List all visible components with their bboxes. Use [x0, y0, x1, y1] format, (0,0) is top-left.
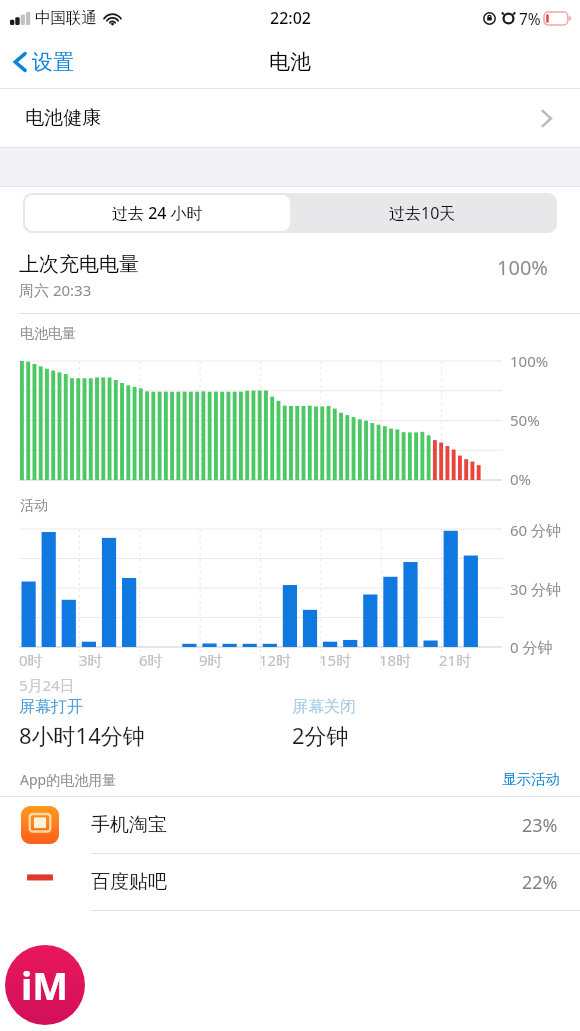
- staticText: 屏幕打开: [19, 697, 83, 717]
- staticText: 0 分钟: [510, 637, 553, 657]
- staticText: 21时: [439, 650, 472, 670]
- button[interactable]: 设置: [0, 43, 86, 81]
- staticText: 电池: [269, 49, 311, 75]
- staticText: 屏幕关闭: [292, 697, 356, 717]
- button[interactable]: 电池健康: [0, 89, 580, 147]
- staticText: 电池健康: [25, 106, 101, 130]
- staticText: 中国联通: [35, 8, 97, 28]
- staticText: 电池电量: [20, 325, 76, 343]
- staticText: 23%: [522, 813, 558, 838]
- staticText: 上次充电电量: [19, 252, 139, 277]
- staticText: 30 分钟: [510, 579, 562, 599]
- staticText: 15时: [319, 650, 352, 670]
- staticText: 7%: [519, 8, 541, 29]
- staticText: 百度贴吧: [91, 870, 167, 894]
- staticText: App的电池用量: [20, 770, 117, 789]
- button[interactable]: 百度贴吧: [0, 854, 580, 910]
- staticText: 60 分钟: [510, 520, 562, 540]
- staticText: 显示活动: [502, 770, 560, 788]
- staticText: 6时: [139, 650, 163, 670]
- staticText: 过去 24 小时: [112, 202, 203, 224]
- staticText: 9时: [199, 650, 223, 670]
- staticText: 2分钟: [292, 720, 349, 750]
- staticText: 活动: [20, 497, 48, 515]
- button[interactable]: 过去 24 小时: [25, 195, 290, 231]
- button[interactable]: 手机淘宝: [0, 797, 580, 853]
- staticText: 22%: [522, 870, 558, 895]
- button[interactable]: 过去10天: [290, 195, 555, 231]
- staticText: 0%: [510, 469, 532, 489]
- staticText: iM: [21, 959, 69, 1011]
- staticText: 12时: [259, 650, 292, 670]
- staticText: 手机淘宝: [91, 813, 167, 837]
- staticText: 周六 20:33: [19, 280, 92, 300]
- button[interactable]: 显示活动: [482, 764, 580, 794]
- staticText: 0时: [19, 650, 43, 670]
- staticText: 100%: [510, 351, 549, 371]
- staticText: 设置: [32, 49, 74, 75]
- staticText: 过去10天: [389, 202, 456, 224]
- staticText: 5月24日: [19, 675, 75, 695]
- staticText: 50%: [510, 410, 540, 430]
- staticText: 22:02: [270, 7, 311, 29]
- staticText: 3时: [79, 650, 103, 670]
- staticText: 18时: [379, 650, 412, 670]
- staticText: 100%: [497, 254, 548, 281]
- staticText: 8小时14分钟: [19, 720, 145, 750]
